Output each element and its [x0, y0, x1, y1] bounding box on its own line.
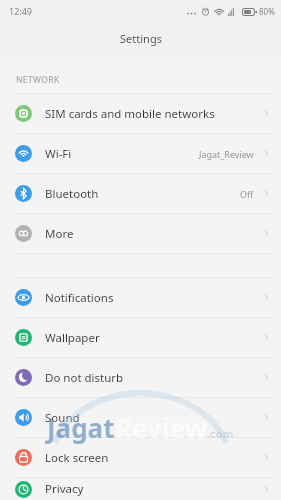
- staticText: SIM cards and mobile networks: [45, 106, 262, 122]
- button[interactable]: Wi-Fi: [0, 134, 281, 173]
- button[interactable]: More: [0, 214, 281, 253]
- staticText: Do not disturb: [45, 370, 262, 386]
- other: SIM cards: [15, 105, 32, 122]
- other: Sound: [15, 409, 32, 426]
- staticText: .com: [207, 426, 234, 441]
- staticText: 12:49: [9, 5, 33, 17]
- staticText: Jagat_Review: [199, 148, 254, 160]
- button[interactable]: Wallpaper: [0, 318, 281, 357]
- staticText: 80%: [259, 6, 275, 17]
- staticText: Notifications: [45, 290, 262, 306]
- button[interactable]: Privacy: [0, 478, 281, 500]
- button[interactable]: Lock screen: [0, 438, 281, 477]
- staticText: Bluetooth: [45, 186, 240, 202]
- button[interactable]: SIM cards: [0, 94, 281, 133]
- button[interactable]: Bluetooth: [0, 174, 281, 213]
- staticText: Privacy: [45, 481, 262, 497]
- staticText: NETWORK: [16, 74, 60, 86]
- other: Do not disturb: [15, 369, 32, 386]
- staticText: Wallpaper: [45, 330, 262, 346]
- button[interactable]: Do not disturb: [0, 358, 281, 397]
- other: Wi-Fi: [15, 145, 32, 162]
- staticText: Sound: [45, 410, 262, 426]
- other: More: [15, 225, 32, 242]
- staticText: More: [45, 226, 262, 242]
- other: Wallpaper: [15, 329, 32, 346]
- staticText: Lock screen: [45, 450, 262, 466]
- other: Bluetooth: [15, 185, 32, 202]
- other: Lock screen: [15, 449, 32, 466]
- other: Notifications: [15, 289, 32, 306]
- staticText: Review: [115, 410, 207, 445]
- button[interactable]: Notifications: [0, 278, 281, 317]
- other: Privacy: [15, 481, 32, 498]
- button[interactable]: Sound: [0, 398, 281, 437]
- staticText: Off: [240, 188, 254, 200]
- staticText: Wi-Fi: [45, 146, 199, 162]
- staticText: Jagat: [47, 410, 115, 445]
- staticText: Settings: [120, 31, 162, 46]
